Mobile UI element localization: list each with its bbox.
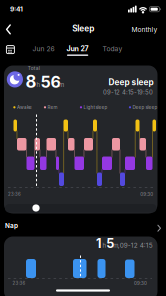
staticText: Monthly xyxy=(131,26,157,33)
staticText: Sleep xyxy=(72,24,94,33)
staticText: 8 xyxy=(26,72,37,92)
staticText: 09:30 xyxy=(134,281,147,286)
staticText: 09:30 xyxy=(140,192,153,197)
staticText: Rem xyxy=(47,105,57,110)
staticText: 23:36 xyxy=(12,281,25,286)
staticText: h xyxy=(36,81,40,88)
staticText: Total xyxy=(28,65,40,71)
staticText: Jun 26 xyxy=(32,45,54,53)
staticText: Nap xyxy=(5,222,18,229)
staticText: ,09-12 4:15 xyxy=(118,242,153,249)
staticText: m xyxy=(113,242,118,249)
staticText: 9:41 xyxy=(10,5,23,13)
button[interactable] xyxy=(6,24,11,35)
button[interactable]: Today xyxy=(102,45,122,53)
staticText: h xyxy=(103,242,107,249)
button[interactable] xyxy=(5,45,15,55)
staticText: 56 xyxy=(40,73,60,91)
staticText: 23:36 xyxy=(8,192,21,197)
staticText: 5 xyxy=(106,236,114,251)
staticText: 1 xyxy=(96,236,101,251)
button[interactable]: Nap xyxy=(5,222,18,229)
staticText: Jun 27 xyxy=(67,45,89,53)
button[interactable] xyxy=(32,204,40,212)
staticText: Deep sleep xyxy=(108,77,153,87)
button[interactable]: Monthly xyxy=(131,26,157,33)
staticText: Light sleep xyxy=(83,105,107,110)
staticText: Deep sleep xyxy=(132,105,157,110)
staticText: Awake xyxy=(17,105,32,110)
button[interactable]: Jun 27 xyxy=(65,42,91,58)
staticText: Today xyxy=(102,45,122,53)
button[interactable] xyxy=(157,225,161,232)
staticText: m xyxy=(59,81,64,88)
button[interactable]: Jun 26 xyxy=(32,45,54,53)
staticText: 09-12 4:15-19:50 xyxy=(103,89,153,96)
